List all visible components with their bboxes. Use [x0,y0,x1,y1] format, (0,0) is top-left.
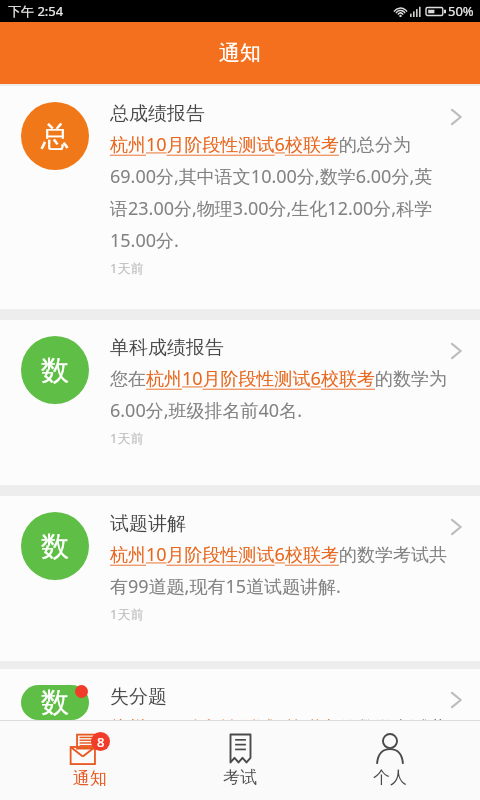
staticText: 数 [41,685,69,720]
button[interactable]: 通知 [30,729,150,792]
staticText: 50% [448,2,474,20]
button[interactable]: 数 [0,320,480,485]
button[interactable]: 个人 [330,730,450,791]
staticText: 失分题 [110,685,167,709]
staticText: 您在杭州10月阶段性测试6校联考的数学为 6.00分,班级排名前40名. [110,366,449,423]
staticText: 总 [41,119,69,154]
staticText: 单科成绩报告 [110,336,224,360]
button[interactable]: 数 [0,669,480,720]
staticText: 考试 [223,767,257,788]
button[interactable]: 总 [0,86,480,309]
staticText: 数 [41,353,69,388]
staticText: 杭州10月阶段性测试6校联考的数学考试共有99道题,现有15道试题讲解. [110,542,449,599]
staticText: 总成绩报告 [110,102,205,126]
staticText: 1天前 [110,605,144,623]
staticText: 8 [97,733,105,751]
button[interactable]: 考试 [180,730,300,791]
staticText: 杭州10月阶段性测试6校联考的总分为69.00分,其中语文10.00分,数学6.… [110,132,449,253]
other: 通知 [70,732,110,765]
staticText: 1天前 [110,259,144,277]
other: 个人 [375,733,405,764]
staticText: 下午 2:54 [8,2,64,20]
other: 考试 [227,733,254,764]
button[interactable]: 数 [0,496,480,661]
staticText: 个人 [373,767,407,788]
staticText: 杭州10月阶段性测试6校联考的数学考试共有5道失分题. [110,715,449,720]
staticText: 1天前 [110,429,144,447]
staticText: 数 [41,529,69,564]
staticText: 试题讲解 [110,512,186,536]
staticText: 通知 [219,40,261,66]
staticText: 通知 [73,768,107,789]
